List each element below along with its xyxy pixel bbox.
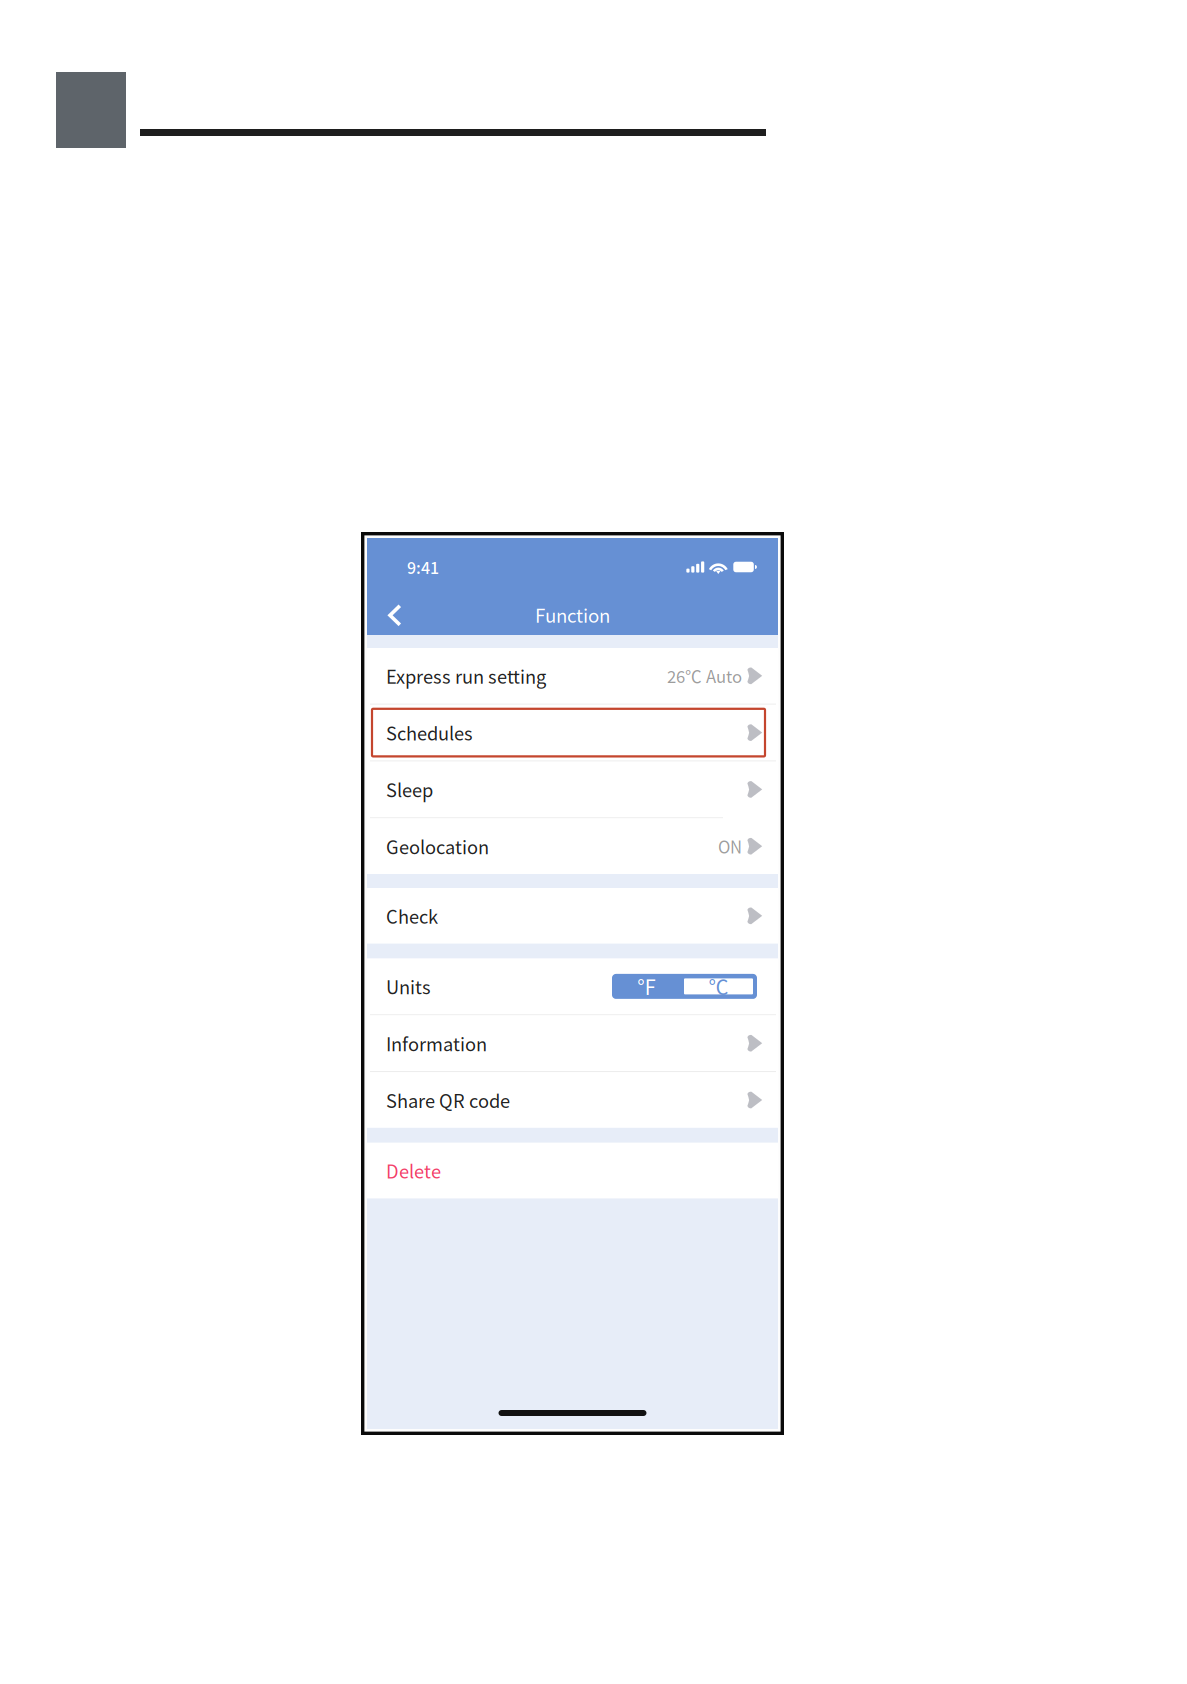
button[interactable]: Schedules [367, 705, 778, 760]
button[interactable]: Check [367, 888, 778, 944]
button[interactable]: ℃ [682, 974, 758, 999]
button[interactable]: Express run setting [367, 648, 778, 704]
staticText: Information [386, 1030, 487, 1056]
staticText: Express run setting [386, 663, 546, 689]
staticText: Delete [386, 1157, 441, 1184]
staticText: Geolocation [386, 833, 489, 859]
staticText: Check [386, 903, 438, 929]
staticText: 9:41 [407, 555, 439, 579]
staticText: ON [718, 834, 742, 858]
button[interactable]: Delete [367, 1143, 778, 1198]
button[interactable]: ℉ [610, 974, 682, 999]
staticText: Schedules [386, 719, 473, 746]
button[interactable]: Back [374, 596, 416, 635]
staticText: Share QR code [386, 1087, 510, 1113]
staticText: ℉ [636, 972, 656, 1001]
button[interactable]: Information [367, 1015, 778, 1071]
staticText: 26℃ Auto [667, 664, 742, 688]
staticText: Units [386, 973, 431, 1000]
button[interactable]: Geolocation [367, 818, 778, 874]
staticText: ℃ [708, 972, 728, 1001]
button[interactable]: Sleep [367, 762, 778, 817]
button[interactable]: Share QR code [367, 1072, 778, 1128]
staticText: Sleep [386, 776, 433, 803]
staticText: Function [535, 601, 610, 628]
